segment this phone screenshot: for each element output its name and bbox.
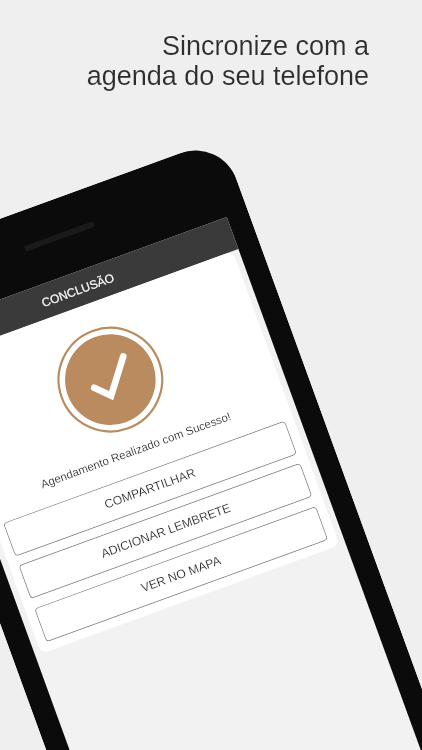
staticText: ADICIONAR LEMBRETE bbox=[99, 501, 233, 561]
staticText: CONCLUSÃO bbox=[40, 270, 117, 309]
staticText: VER NO MAPA bbox=[139, 553, 223, 595]
staticText: Agendamento Realizado com Sucesso! bbox=[39, 410, 233, 491]
staticText: COMPARTILHAR bbox=[102, 466, 197, 512]
button[interactable]: CONCLUSÃO bbox=[0, 217, 238, 362]
staticText: Sincronize com a agenda do seu telefone bbox=[0, 31, 369, 91]
button[interactable]: COMPARTILHAR bbox=[3, 420, 297, 557]
button[interactable]: VER NO MAPA bbox=[34, 506, 328, 642]
button[interactable]: ADICIONAR LEMBRETE bbox=[18, 463, 312, 599]
